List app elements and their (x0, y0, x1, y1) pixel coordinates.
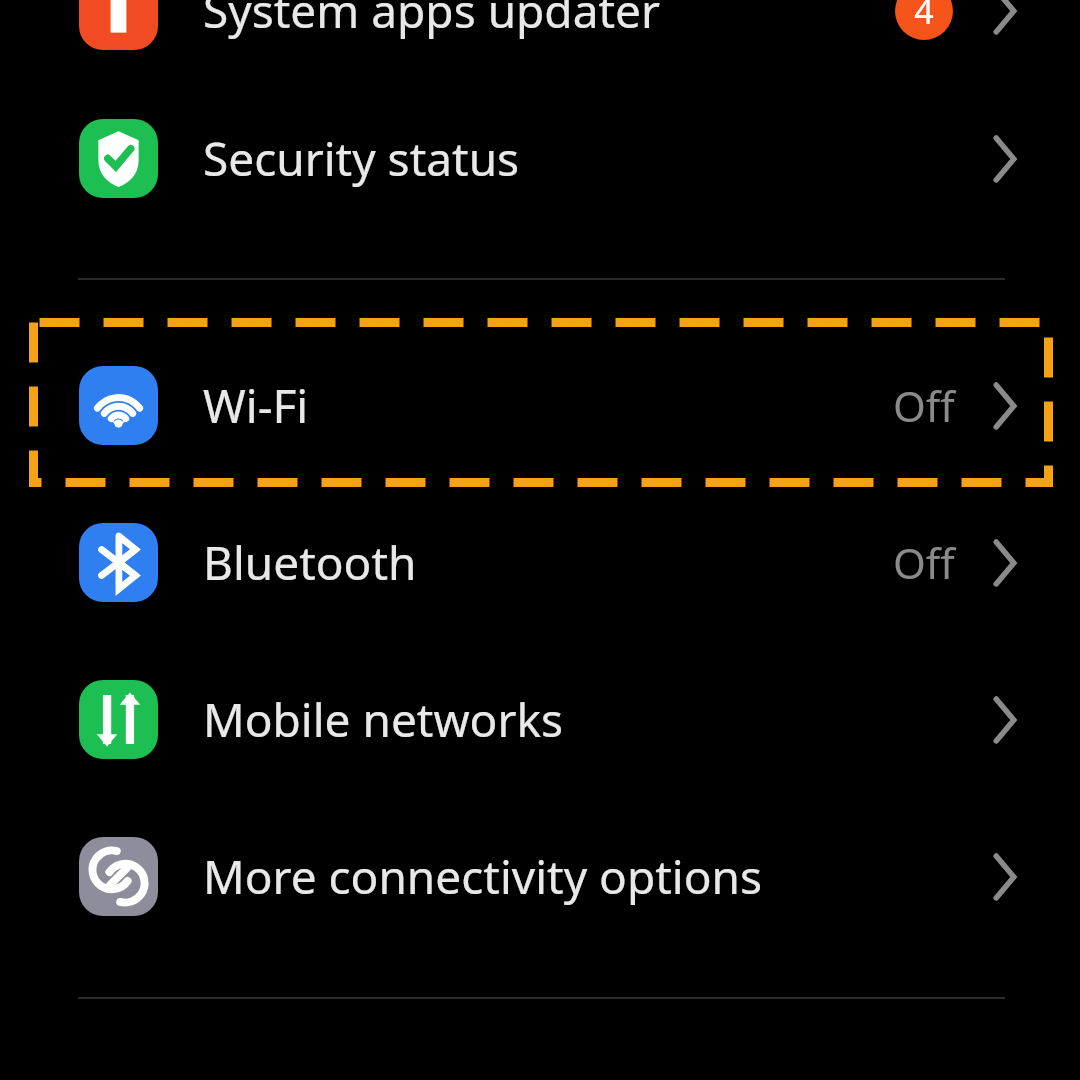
button[interactable]: More connectivity options (0, 798, 1080, 955)
staticText: Wi-Fi (203, 374, 309, 437)
button[interactable]: System apps updater (0, 0, 1080, 89)
staticText: Bluetooth (203, 531, 417, 594)
staticText: Off (893, 534, 955, 591)
staticText: Mobile networks (203, 688, 564, 751)
button[interactable]: Mobile networks (0, 641, 1080, 798)
staticText: System apps updater (203, 0, 661, 42)
staticText: 4 (914, 0, 934, 34)
button[interactable]: Security status (0, 80, 1080, 237)
other: Wi-Fi row highlight (0, 0, 1080, 1080)
staticText: Security status (203, 127, 520, 190)
staticText: More connectivity options (203, 845, 762, 908)
staticText: Off (893, 377, 955, 434)
button[interactable]: Bluetooth (0, 484, 1080, 641)
button[interactable]: Wi-Fi (0, 327, 1080, 484)
